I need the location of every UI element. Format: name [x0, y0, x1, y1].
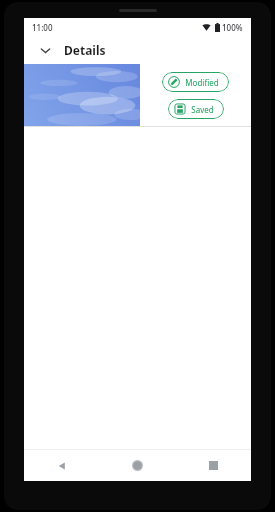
button[interactable]: Collapse: [32, 37, 58, 63]
button[interactable]: Saved: [168, 99, 224, 119]
staticText: Details: [64, 42, 106, 58]
staticText: Saved: [191, 104, 214, 115]
button[interactable]: Recents: [175, 450, 251, 481]
button[interactable]: Modified: [162, 72, 229, 92]
staticText: 100%: [222, 22, 243, 33]
staticText: 11:00: [32, 22, 53, 33]
button[interactable]: Home: [99, 450, 175, 481]
staticText: Modified: [185, 77, 219, 88]
button[interactable]: Back: [24, 450, 99, 481]
